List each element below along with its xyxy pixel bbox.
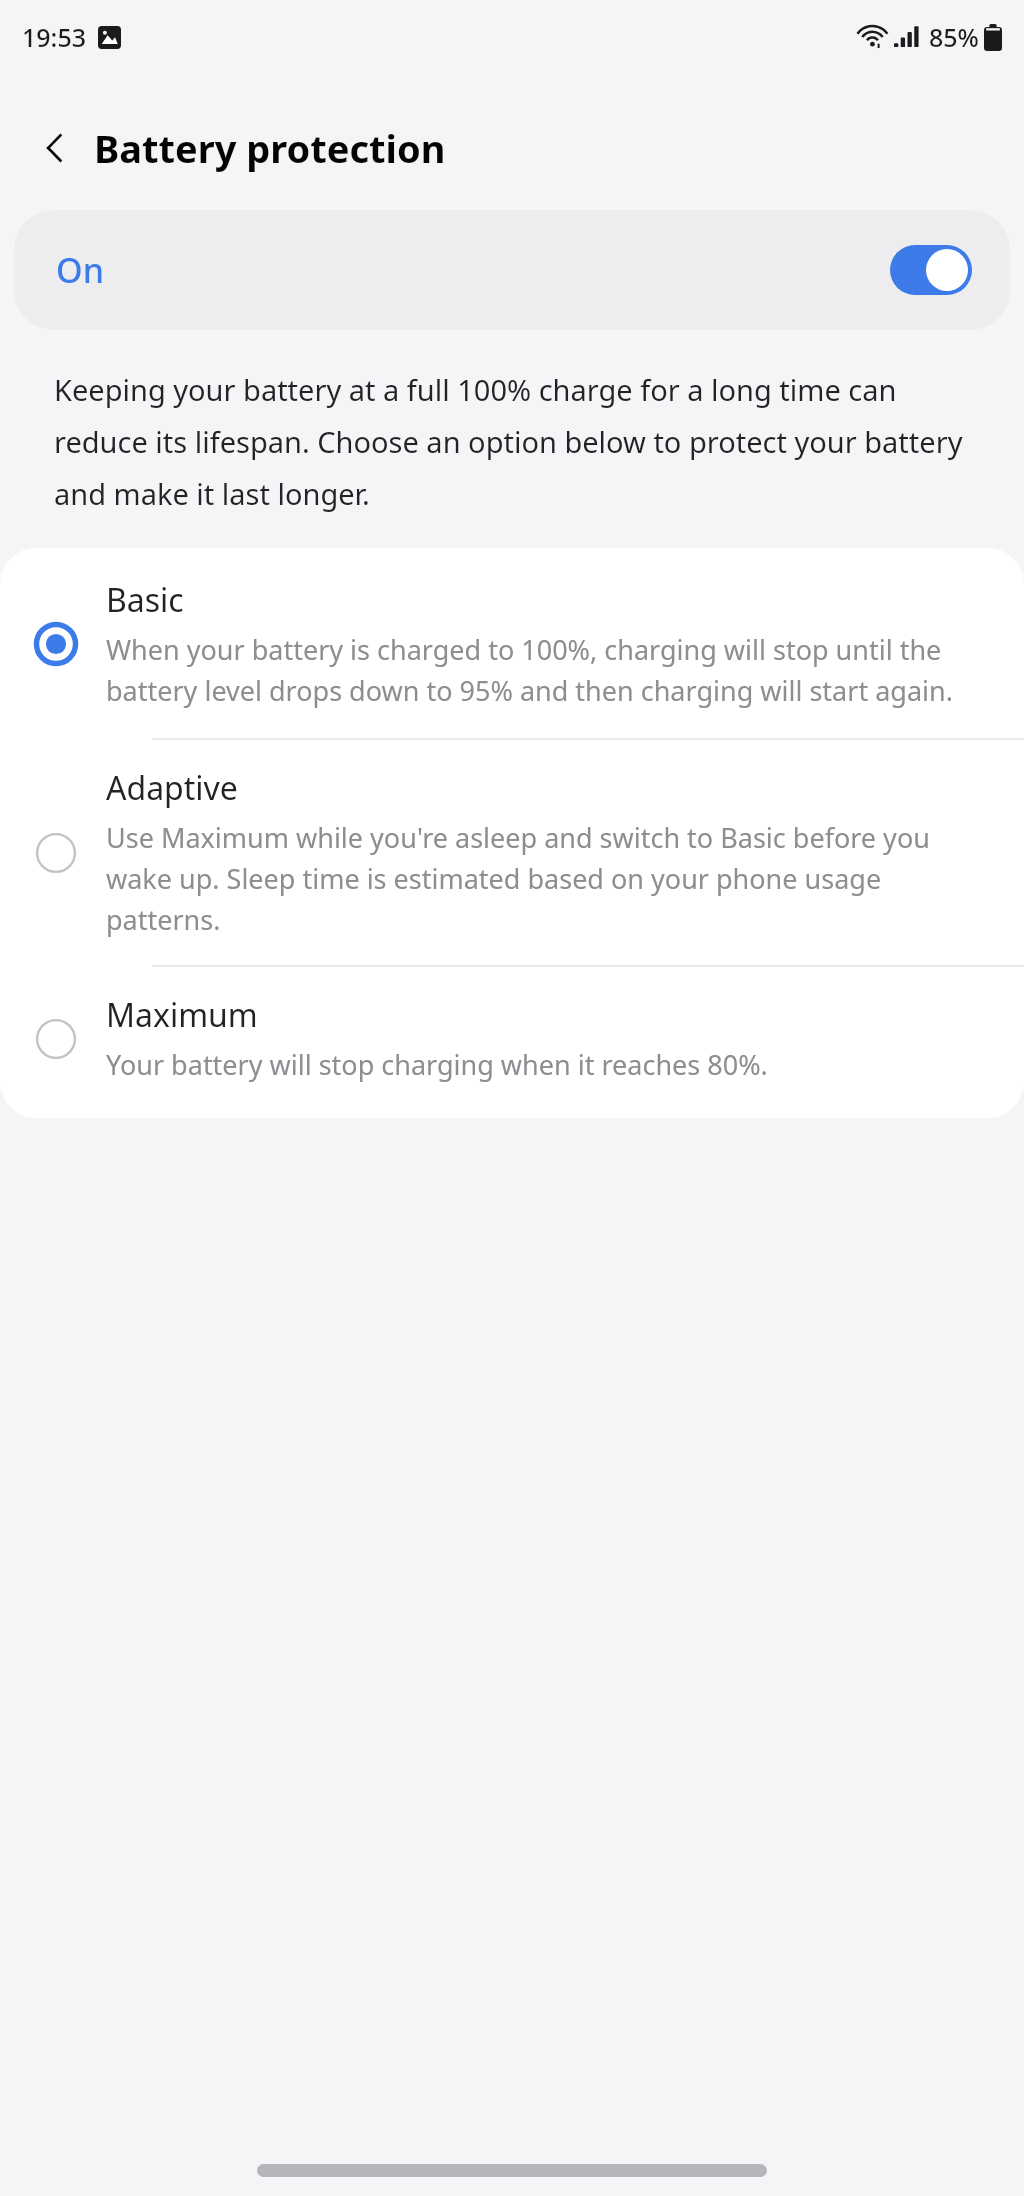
staticText: On — [56, 247, 104, 293]
button[interactable]: Adaptive — [0, 740, 1024, 965]
staticText: When your battery is charged to 100%, ch… — [106, 628, 996, 710]
staticText: Adaptive — [106, 766, 238, 810]
staticText: Basic — [106, 578, 184, 622]
staticText: 19:53 — [22, 20, 87, 54]
staticText: Battery protection — [94, 122, 446, 174]
staticText: Your battery will stop charging when it … — [106, 1043, 768, 1084]
staticText: Keeping your battery at a full 100% char… — [54, 360, 970, 516]
button[interactable]: Maximum — [0, 967, 1024, 1118]
staticText: 85% — [929, 20, 979, 54]
button[interactable]: On — [14, 210, 1010, 330]
staticText: Use Maximum while you're asleep and swit… — [106, 816, 996, 939]
button[interactable]: Back — [22, 115, 88, 181]
staticText: Maximum — [106, 993, 258, 1037]
button[interactable]: Basic — [0, 548, 1024, 738]
